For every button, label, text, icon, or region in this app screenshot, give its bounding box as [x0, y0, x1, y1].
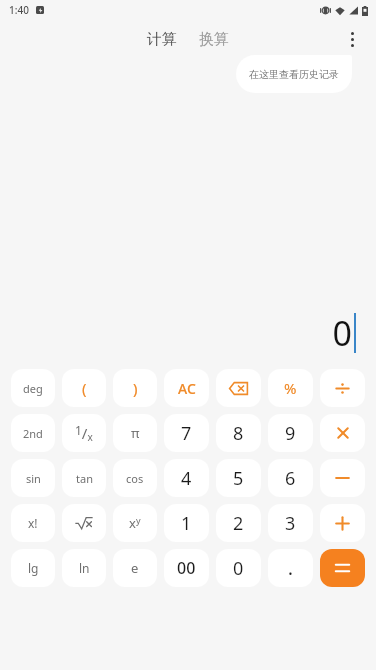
- button[interactable]: 2: [216, 504, 261, 542]
- button[interactable]: Multiply: [320, 414, 365, 452]
- staticText: .: [288, 556, 293, 581]
- staticText: sin: [26, 471, 41, 486]
- button[interactable]: x!: [11, 504, 55, 542]
- button[interactable]: 0: [216, 549, 261, 587]
- staticText: deg: [23, 381, 43, 396]
- staticText: 6: [285, 466, 296, 491]
- staticText: lg: [28, 560, 39, 576]
- button[interactable]: 换算: [193, 26, 235, 53]
- staticText: 8: [233, 421, 244, 446]
- button[interactable]: AC: [164, 369, 209, 407]
- staticText: 在这里查看历史记录: [249, 68, 339, 81]
- button[interactable]: 8: [216, 414, 261, 452]
- staticText: %: [284, 378, 297, 398]
- staticText: 00: [177, 557, 196, 579]
- button[interactable]: sin: [11, 459, 55, 497]
- button[interactable]: Equals: [320, 549, 365, 587]
- staticText: 3: [285, 511, 296, 536]
- button[interactable]: π: [113, 414, 157, 452]
- button[interactable]: Square root: [62, 504, 106, 542]
- staticText: 5: [233, 466, 244, 491]
- button[interactable]: 00: [164, 549, 209, 587]
- button[interactable]: ): [113, 369, 157, 407]
- button[interactable]: deg: [11, 369, 55, 407]
- button[interactable]: lg: [11, 549, 55, 587]
- button[interactable]: 3: [268, 504, 313, 542]
- staticText: x!: [28, 515, 38, 531]
- staticText: 1:40: [9, 3, 29, 17]
- staticText: 0: [233, 556, 244, 581]
- button[interactable]: Reciprocal: [62, 414, 106, 452]
- staticText: 换算: [199, 30, 229, 49]
- staticText: 1/x: [75, 422, 93, 444]
- button[interactable]: 7: [164, 414, 209, 452]
- button[interactable]: 计算: [141, 26, 183, 53]
- staticText: e: [131, 559, 139, 577]
- staticText: 2: [233, 511, 244, 536]
- button[interactable]: 1: [164, 504, 209, 542]
- staticText: 0: [332, 310, 352, 356]
- button[interactable]: Power: [113, 504, 157, 542]
- button[interactable]: 2nd: [11, 414, 55, 452]
- button[interactable]: 4: [164, 459, 209, 497]
- button[interactable]: 6: [268, 459, 313, 497]
- button[interactable]: tan: [62, 459, 106, 497]
- button[interactable]: ln: [62, 549, 106, 587]
- button[interactable]: %: [268, 369, 313, 407]
- staticText: 计算: [147, 30, 177, 49]
- staticText: 7: [181, 421, 192, 446]
- button[interactable]: 9: [268, 414, 313, 452]
- staticText: π: [131, 424, 140, 442]
- button[interactable]: Add: [320, 504, 365, 542]
- staticText: AC: [178, 379, 196, 398]
- button[interactable]: Divide: [320, 369, 365, 407]
- staticText: 1: [181, 511, 192, 536]
- staticText: ): [133, 378, 138, 398]
- button[interactable]: Backspace: [216, 369, 261, 407]
- staticText: 4: [181, 466, 192, 491]
- button[interactable]: .: [268, 549, 313, 587]
- button[interactable]: 5: [216, 459, 261, 497]
- staticText: cos: [126, 471, 144, 486]
- staticText: ln: [79, 560, 90, 576]
- button[interactable]: Subtract: [320, 459, 365, 497]
- staticText: tan: [76, 471, 93, 486]
- button[interactable]: cos: [113, 459, 157, 497]
- staticText: 9: [285, 421, 296, 446]
- staticText: (: [82, 378, 87, 398]
- button[interactable]: e: [113, 549, 157, 587]
- button[interactable]: More options: [334, 21, 370, 57]
- staticText: 2nd: [23, 426, 43, 441]
- button[interactable]: (: [62, 369, 106, 407]
- staticText: xy: [129, 514, 141, 532]
- button[interactable]: 在这里查看历史记录: [236, 55, 352, 93]
